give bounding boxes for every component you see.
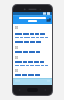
button[interactable]: Section marker bbox=[15, 69, 50, 72]
button[interactable] bbox=[15, 65, 50, 66]
button[interactable] bbox=[15, 41, 50, 43]
button[interactable] bbox=[15, 74, 50, 76]
button[interactable]: Section marker bbox=[15, 56, 50, 59]
button[interactable]: More options bbox=[13, 15, 52, 24]
button[interactable] bbox=[15, 51, 50, 53]
button[interactable]: Advertisement banner bbox=[13, 78, 52, 85]
button[interactable]: Section marker bbox=[15, 46, 50, 49]
button[interactable] bbox=[15, 61, 50, 63]
button[interactable]: More options bbox=[44, 16, 52, 24]
button[interactable]: Section marker bbox=[15, 26, 50, 29]
button[interactable] bbox=[15, 37, 50, 38]
button[interactable] bbox=[15, 33, 50, 35]
